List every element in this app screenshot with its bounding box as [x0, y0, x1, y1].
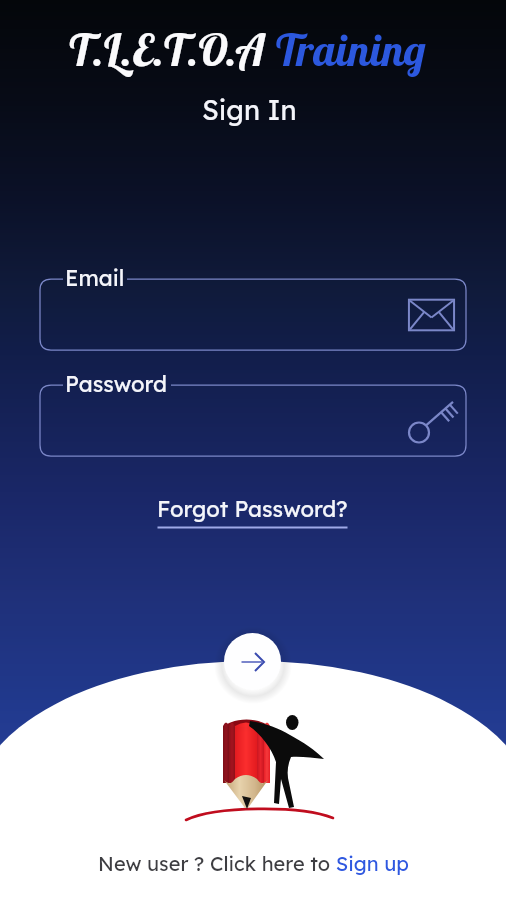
staticText: Email [65, 264, 125, 292]
button[interactable]: Forgot Password? [151, 492, 354, 531]
button[interactable] [40, 279, 466, 350]
staticText: Password [65, 370, 167, 398]
staticText: New user ? Click here to Sign up [98, 851, 409, 876]
button[interactable]: New user ? Click here to Sign up [92, 848, 415, 879]
button[interactable]: Sign in [224, 633, 281, 690]
staticText: Sign In [202, 93, 297, 127]
staticText: Forgot Password? [157, 495, 348, 523]
button[interactable] [40, 385, 466, 456]
staticText: T.L.E.T.O.A Training [67, 22, 427, 77]
